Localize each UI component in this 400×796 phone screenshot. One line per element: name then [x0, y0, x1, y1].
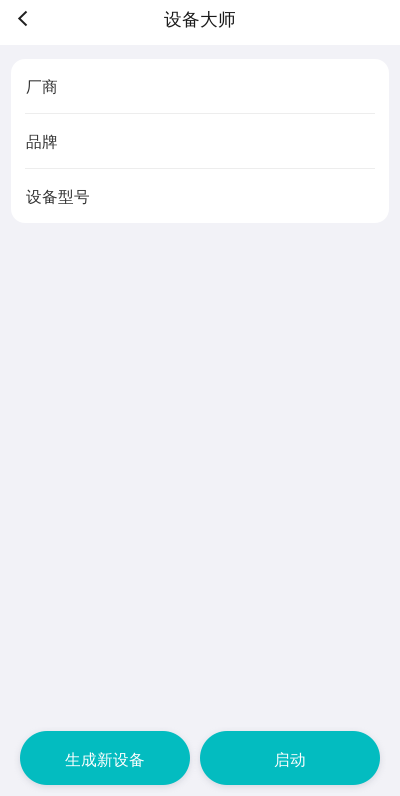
button[interactable]: 厂商 [11, 59, 389, 114]
staticText: 厂商 [26, 77, 58, 97]
staticText: 品牌 [26, 132, 58, 152]
staticText: 设备大师 [164, 8, 236, 31]
button[interactable]: Back [0, 0, 50, 37]
button[interactable]: 生成新设备 [20, 731, 190, 785]
button[interactable]: 品牌 [11, 114, 389, 169]
button[interactable]: 设备型号 [11, 169, 389, 223]
button[interactable]: 启动 [200, 731, 380, 785]
staticText: 设备型号 [26, 187, 90, 207]
staticText: 启动 [274, 750, 306, 770]
staticText: 生成新设备 [65, 750, 145, 770]
